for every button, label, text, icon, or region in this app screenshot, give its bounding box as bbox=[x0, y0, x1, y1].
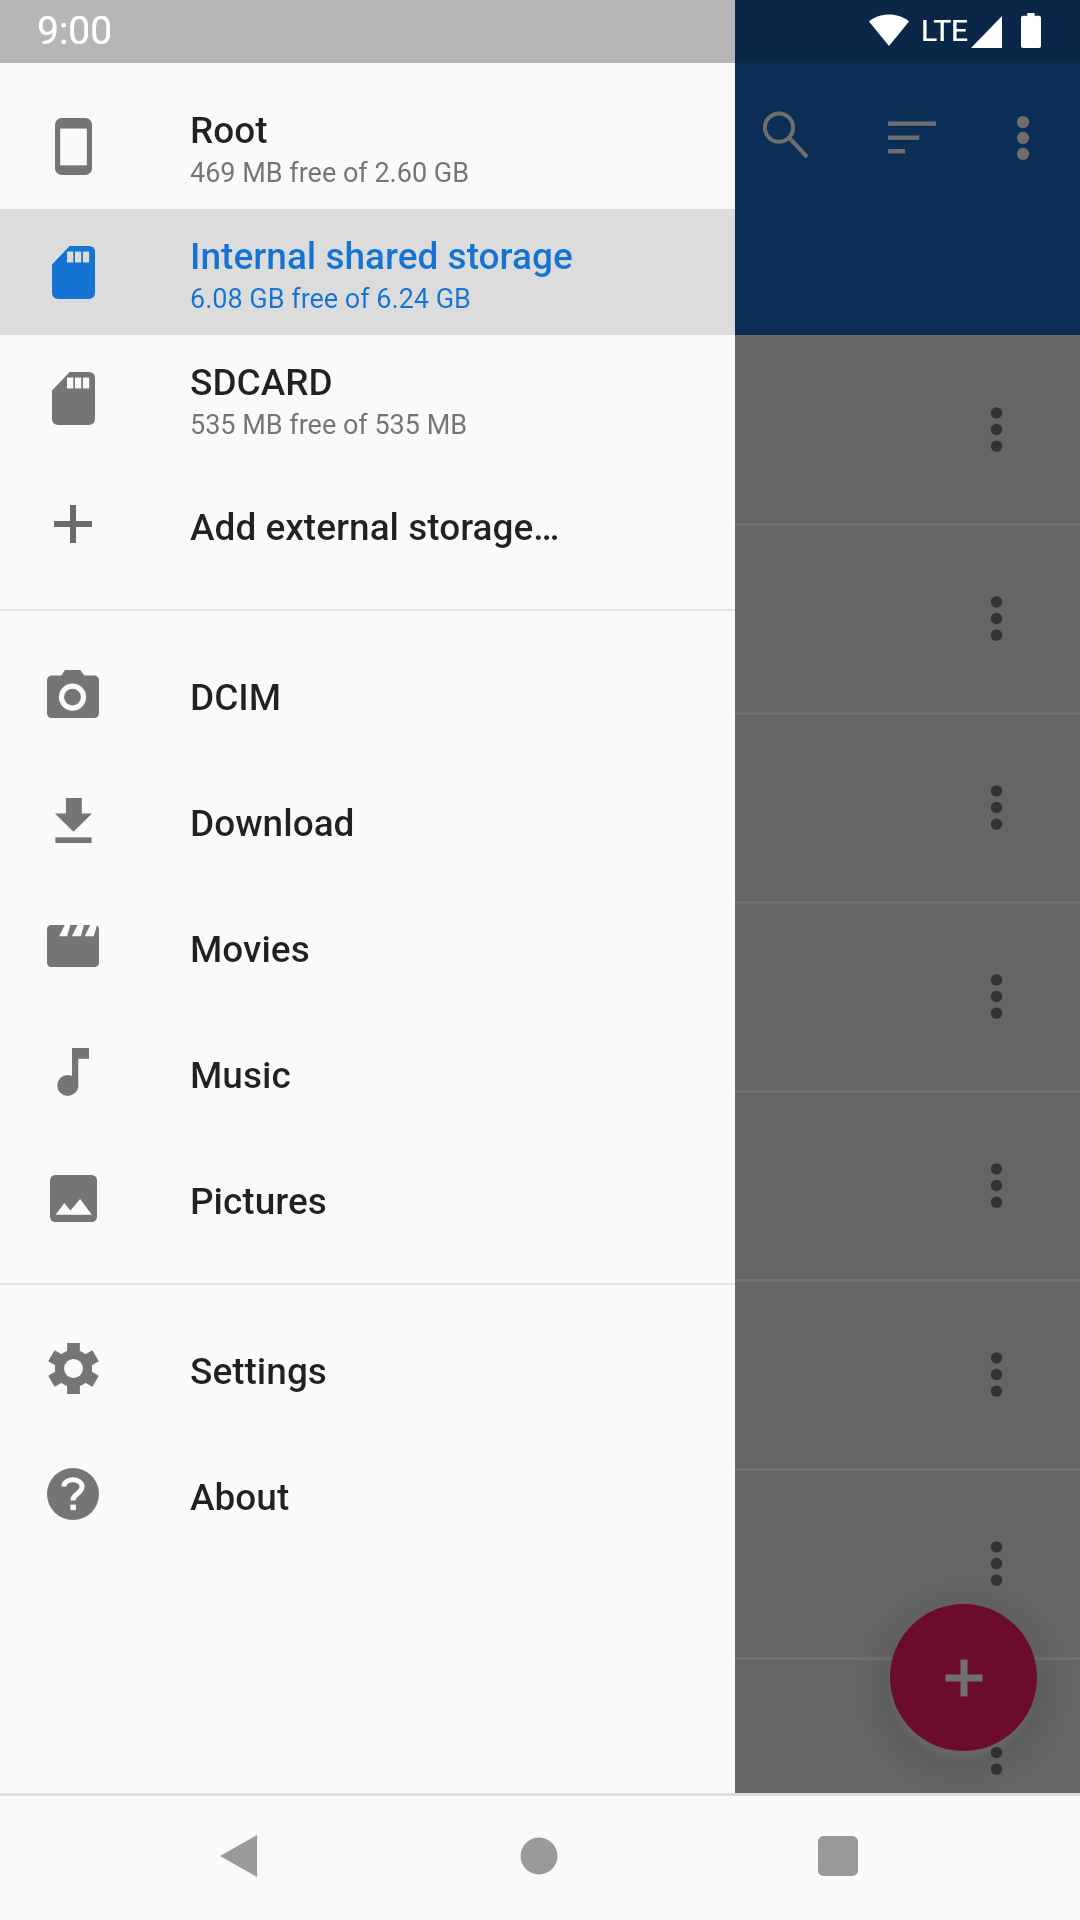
staticText: 9:00 bbox=[37, 8, 113, 54]
button[interactable]: Download bbox=[0, 757, 735, 883]
button[interactable]: Root bbox=[0, 83, 735, 209]
button[interactable]: More options bbox=[951, 951, 1041, 1041]
button[interactable]: Sort bbox=[857, 81, 967, 191]
button[interactable]: More options bbox=[951, 1518, 1041, 1608]
button[interactable]: Back bbox=[198, 1816, 278, 1896]
button[interactable]: Internal shared storage bbox=[0, 209, 735, 335]
staticText: About bbox=[190, 1476, 290, 1519]
button[interactable]: More options bbox=[951, 384, 1041, 474]
staticText: 6.08 GB free of 6.24 GB bbox=[190, 283, 471, 315]
staticText: Settings bbox=[190, 1350, 327, 1393]
button[interactable]: Search bbox=[730, 81, 840, 191]
button[interactable]: More options bbox=[951, 1707, 1041, 1797]
button[interactable]: Home bbox=[499, 1816, 579, 1896]
button[interactable]: Add external storage… bbox=[0, 461, 735, 587]
button[interactable]: Music bbox=[0, 1009, 735, 1135]
staticText: Pictures bbox=[190, 1180, 327, 1223]
staticText: 469 MB free of 2.60 GB bbox=[190, 157, 469, 189]
button[interactable]: More options bbox=[951, 573, 1041, 663]
staticText: Add external storage… bbox=[190, 506, 560, 549]
staticText: Root bbox=[190, 109, 268, 152]
staticText: SDCARD bbox=[190, 361, 333, 404]
staticText: 535 MB free of 535 MB bbox=[190, 409, 468, 441]
button[interactable]: Settings bbox=[0, 1305, 735, 1431]
staticText: LTE bbox=[921, 13, 969, 48]
button[interactable]: More options bbox=[951, 1329, 1041, 1419]
staticText: Download bbox=[190, 802, 355, 845]
staticText: Music bbox=[190, 1054, 291, 1097]
staticText: Movies bbox=[190, 928, 310, 971]
button[interactable]: DCIM bbox=[0, 631, 735, 757]
button[interactable]: Add bbox=[890, 1604, 1037, 1751]
button[interactable]: Recents bbox=[798, 1816, 878, 1896]
button[interactable]: More options bbox=[951, 762, 1041, 852]
button[interactable]: More options bbox=[951, 1140, 1041, 1230]
button[interactable]: Pictures bbox=[0, 1135, 735, 1261]
button[interactable]: About bbox=[0, 1431, 735, 1557]
button[interactable]: Movies bbox=[0, 883, 735, 1009]
button[interactable]: SDCARD bbox=[0, 335, 735, 461]
staticText: Internal shared storage bbox=[190, 235, 573, 278]
button[interactable]: More options bbox=[968, 83, 1078, 193]
staticText: DCIM bbox=[190, 676, 282, 719]
